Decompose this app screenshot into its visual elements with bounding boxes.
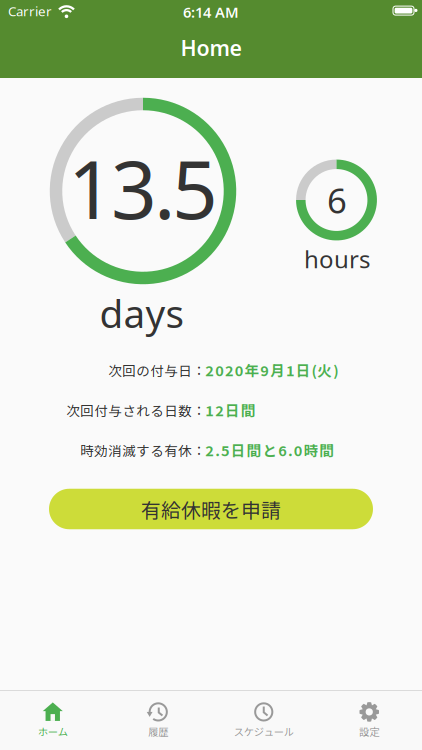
staticText: ：	[192, 440, 205, 460]
staticText: Carrier	[8, 2, 52, 20]
staticText: 12日間	[205, 399, 256, 420]
staticText: 6	[327, 177, 347, 223]
staticText: 次回の付与日	[108, 360, 192, 380]
staticText: 6:14 AM	[183, 2, 239, 22]
staticText: 有給休暇を申請	[141, 495, 281, 523]
button[interactable]: 有給休暇を申請	[49, 489, 373, 529]
staticText: 履歴	[148, 724, 168, 739]
staticText: Home	[180, 34, 241, 62]
staticText: ホーム	[38, 724, 68, 739]
staticText: ：	[192, 400, 205, 420]
staticText: 2.5日間と6.0時間	[205, 439, 334, 460]
button[interactable]: 履歴	[105, 692, 211, 748]
staticText: 設定	[359, 724, 379, 739]
staticText: スケジュール	[234, 724, 294, 739]
staticText: hours	[304, 243, 370, 275]
button[interactable]: 設定	[316, 692, 422, 748]
staticText: days	[99, 287, 184, 339]
staticText: 時効消滅する有休	[80, 440, 192, 460]
staticText: 次回付与される日数	[66, 400, 192, 420]
staticText: 13.5	[68, 135, 218, 241]
staticText: ：	[192, 360, 205, 380]
button[interactable]: ホーム	[0, 692, 105, 748]
staticText: 2020年9月1日(火)	[205, 359, 338, 380]
button[interactable]: スケジュール	[211, 692, 316, 748]
